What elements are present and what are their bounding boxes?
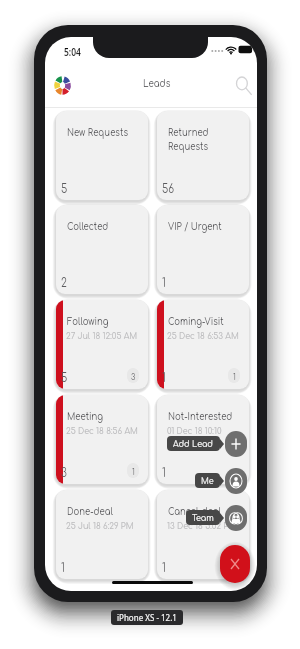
staticText: 25 Jul 18 6:29 PM xyxy=(66,521,134,532)
button[interactable]: VIP / Urgent xyxy=(157,205,249,294)
staticText: 2 xyxy=(61,276,67,289)
staticText: 3 xyxy=(131,371,136,381)
staticText: 5:04 xyxy=(64,46,81,60)
button[interactable]: Team xyxy=(186,510,220,525)
button[interactable]: Add Lead xyxy=(225,431,247,457)
staticText: Cancel-deal xyxy=(168,507,221,518)
staticText: Returned Requests xyxy=(168,128,209,152)
button[interactable]: Meeting xyxy=(56,395,148,484)
staticText: VIP / Urgent xyxy=(168,222,222,233)
staticText: Done-deal xyxy=(67,507,113,518)
button[interactable]: Cancel-deal xyxy=(157,490,249,579)
staticText: 1 xyxy=(61,561,65,574)
staticText: iPhone XS - 12.1 xyxy=(117,612,177,623)
button[interactable]: Following xyxy=(56,300,148,389)
button[interactable]: Search xyxy=(232,74,254,96)
staticText: 1 xyxy=(162,466,166,479)
staticText: 1 xyxy=(162,371,166,384)
staticText: Coming-Visit xyxy=(168,317,224,328)
staticText: Not-Interested xyxy=(168,412,233,423)
staticText: 3 xyxy=(61,466,67,479)
staticText: Meeting xyxy=(67,412,104,423)
staticText: 01 Dec 18 10:10 AM xyxy=(167,426,222,448)
button[interactable]: Team xyxy=(225,505,247,531)
staticText: 56 xyxy=(162,182,175,195)
staticText: 1 xyxy=(233,371,236,381)
staticText: 1 xyxy=(132,466,135,476)
staticText: 27 Jul 18 12:05 AM xyxy=(66,331,138,342)
staticText: Add Lead xyxy=(173,438,214,449)
staticText: Team xyxy=(192,512,214,523)
staticText: 1 xyxy=(162,276,166,289)
staticText: 25 Dec 18 8:56 AM xyxy=(66,426,138,437)
staticText: New Requests xyxy=(67,128,128,139)
staticText: Following xyxy=(67,317,109,328)
staticText: Collected xyxy=(67,222,109,233)
button[interactable]: Add Lead xyxy=(167,436,220,451)
button[interactable]: Me xyxy=(225,468,247,494)
button[interactable]: Returned Requests xyxy=(157,111,249,200)
button[interactable]: Collected xyxy=(56,205,148,294)
button[interactable]: Me xyxy=(195,473,220,488)
staticText: 13 Dec 18 5:02 PM xyxy=(167,521,237,532)
button[interactable]: Done-deal xyxy=(56,490,148,579)
button[interactable]: New Requests xyxy=(56,111,148,200)
button[interactable]: Close actions menu xyxy=(220,545,250,583)
staticText: 5 xyxy=(61,182,68,195)
button[interactable]: Coming-Visit xyxy=(157,300,249,389)
staticText: 25 Dec 18 6:53 AM xyxy=(167,331,239,342)
staticText: Leads xyxy=(143,77,171,89)
staticText: 5 xyxy=(61,371,68,384)
staticText: 1 xyxy=(162,561,166,574)
button[interactable]: Not-Interested xyxy=(157,395,249,484)
staticText: Me xyxy=(201,475,214,486)
